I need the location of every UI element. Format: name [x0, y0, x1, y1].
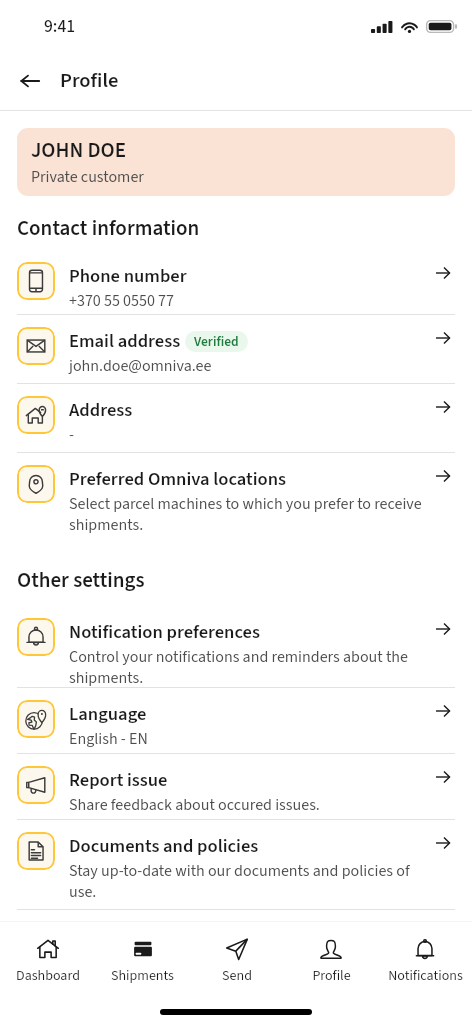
button[interactable]: Phone number — [0, 250, 472, 314]
staticText: Phone number — [69, 263, 187, 289]
button[interactable]: Address — [0, 384, 472, 452]
staticText: Stay up-to-date with our documents and p… — [69, 860, 426, 904]
staticText: Documents and policies — [69, 833, 259, 859]
staticText: Verified — [194, 332, 239, 351]
staticText: Report issue — [69, 767, 168, 793]
staticText: Notifications — [388, 966, 463, 986]
button[interactable]: Profile — [284, 927, 378, 986]
button[interactable]: Shipments — [95, 927, 190, 986]
button[interactable]: Notification preferences — [0, 606, 472, 687]
staticText: Share feedback about occured issues. — [69, 794, 320, 817]
staticText: Contact information — [17, 213, 200, 243]
staticText: 9:41 — [44, 14, 76, 39]
button[interactable]: Send — [190, 927, 284, 986]
button[interactable]: Email address — [0, 315, 472, 383]
button[interactable]: Notifications — [378, 927, 472, 986]
staticText: Control your notifications and reminders… — [69, 646, 426, 687]
staticText: john.doe@omniva.ee — [69, 355, 212, 378]
staticText: Other settings — [17, 565, 145, 595]
staticText: Language — [69, 701, 147, 727]
button[interactable]: Back — [8, 59, 52, 103]
staticText: Private customer — [31, 166, 144, 189]
staticText: Email address — [69, 328, 181, 354]
button[interactable]: Documents and policies — [0, 820, 472, 909]
staticText: Select parcel machines to which you pref… — [69, 493, 426, 537]
staticText: Profile — [312, 966, 351, 986]
button[interactable]: JOHN DOE — [17, 128, 455, 196]
staticText: Preferred Omniva locations — [69, 466, 287, 492]
button[interactable]: Language — [0, 688, 472, 753]
staticText: JOHN DOE — [31, 135, 127, 165]
button[interactable]: Report issue — [0, 754, 472, 819]
button[interactable]: Preferred Omniva locations — [0, 453, 472, 539]
staticText: Shipments — [111, 966, 174, 986]
staticText: English - EN — [69, 728, 148, 751]
staticText: Notification preferences — [69, 619, 260, 645]
staticText: - — [69, 424, 74, 447]
staticText: Address — [69, 397, 133, 423]
staticText: Profile — [60, 66, 119, 95]
staticText: Dashboard — [16, 966, 80, 986]
staticText: Send — [222, 966, 252, 986]
staticText: +370 55 0550 77 — [69, 290, 175, 313]
button[interactable]: Dashboard — [0, 927, 95, 986]
